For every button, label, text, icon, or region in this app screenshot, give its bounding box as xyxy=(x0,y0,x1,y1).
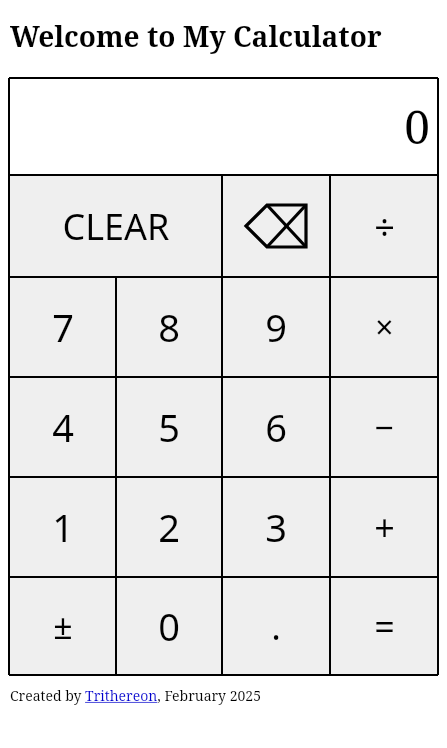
staticText: 0 xyxy=(404,95,430,158)
button[interactable]: ÷ xyxy=(330,175,438,277)
button[interactable]: − xyxy=(330,377,438,477)
staticText: + xyxy=(374,503,395,552)
staticText: 8 xyxy=(158,301,180,353)
staticText: Created by Trithereon, February 2025 xyxy=(10,686,261,705)
button[interactable]: 1 xyxy=(9,477,116,577)
staticText: 0 xyxy=(158,600,180,652)
staticText: 5 xyxy=(158,401,180,453)
staticText: CLEAR xyxy=(62,202,170,251)
button[interactable]: = xyxy=(330,577,438,675)
button[interactable]: + xyxy=(330,477,438,577)
staticText: ± xyxy=(53,603,73,649)
button[interactable]: CLEAR xyxy=(9,175,222,277)
button[interactable]: 6 xyxy=(222,377,330,477)
staticText: 6 xyxy=(265,401,287,453)
button[interactable]: 2 xyxy=(116,477,222,577)
button[interactable]: ± xyxy=(9,577,116,675)
button[interactable]: 8 xyxy=(116,277,222,377)
staticText: ÷ xyxy=(374,202,395,251)
staticText: − xyxy=(374,404,394,450)
button[interactable]: . xyxy=(222,577,330,675)
staticText: × xyxy=(375,305,394,349)
button[interactable]: 9 xyxy=(222,277,330,377)
staticText: 2 xyxy=(158,501,180,553)
staticText: . xyxy=(271,602,281,651)
button[interactable]: 4 xyxy=(9,377,116,477)
staticText: 3 xyxy=(265,501,287,553)
button[interactable]: 5 xyxy=(116,377,222,477)
button[interactable]: × xyxy=(330,277,438,377)
staticText: 1 xyxy=(52,501,74,553)
button[interactable]: 3 xyxy=(222,477,330,577)
button[interactable]: Backspace xyxy=(222,175,330,277)
staticText: 4 xyxy=(52,401,74,453)
staticText: 7 xyxy=(52,301,74,353)
staticText: Welcome to My Calculator xyxy=(10,17,382,55)
staticText: = xyxy=(374,602,395,651)
staticText: 9 xyxy=(265,301,287,353)
button[interactable]: 0 xyxy=(116,577,222,675)
button[interactable]: 7 xyxy=(9,277,116,377)
